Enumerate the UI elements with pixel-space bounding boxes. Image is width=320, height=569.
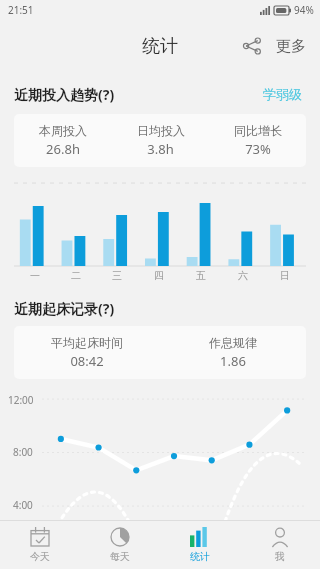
staticText: 73% bbox=[245, 140, 271, 158]
staticText: 统计 bbox=[190, 550, 210, 563]
staticText: 94% bbox=[294, 3, 314, 17]
staticText: 二 bbox=[71, 269, 81, 282]
staticText: 六 bbox=[238, 269, 248, 282]
staticText: 08:42 bbox=[70, 352, 104, 370]
staticText: 21:51 bbox=[8, 3, 34, 17]
button[interactable]: 我 bbox=[240, 521, 320, 569]
staticText: 统计 bbox=[142, 35, 178, 58]
staticText: 本周投入 bbox=[39, 123, 87, 138]
button[interactable]: 更多 bbox=[272, 29, 310, 64]
staticText: 4:00 bbox=[13, 498, 33, 512]
staticText: 学弱级 bbox=[263, 86, 302, 102]
button[interactable]: 平均起床时间 bbox=[14, 326, 306, 379]
staticText: 8:00 bbox=[13, 445, 33, 459]
staticText: 作息规律 bbox=[209, 335, 257, 350]
staticText: 日均投入 bbox=[137, 123, 185, 138]
staticText: 26.8h bbox=[46, 140, 80, 158]
button[interactable]: 本周投入 bbox=[14, 114, 306, 167]
staticText: 四 bbox=[154, 269, 164, 282]
staticText: 日 bbox=[280, 269, 290, 282]
button[interactable]: 统计 bbox=[160, 521, 240, 569]
staticText: 同比增长 bbox=[234, 123, 282, 138]
button[interactable]: 今天 bbox=[0, 521, 80, 569]
staticText: 1.86 bbox=[220, 352, 246, 370]
staticText: 每天 bbox=[110, 550, 130, 563]
button[interactable]: Share bbox=[232, 26, 272, 66]
staticText: 我 bbox=[275, 550, 285, 563]
staticText: 3.8h bbox=[147, 140, 174, 158]
staticText: 更多 bbox=[276, 37, 306, 56]
button[interactable]: 学弱级 bbox=[259, 82, 306, 106]
staticText: 三 bbox=[112, 269, 122, 282]
staticText: 近期投入趋势(?) bbox=[14, 85, 115, 104]
staticText: 平均起床时间 bbox=[51, 335, 123, 350]
staticText: 五 bbox=[196, 269, 206, 282]
staticText: 12:00 bbox=[8, 393, 34, 407]
staticText: 一 bbox=[30, 269, 40, 282]
staticText: 今天 bbox=[30, 550, 50, 563]
staticText: 近期起床记录(?) bbox=[14, 299, 115, 318]
button[interactable]: 每天 bbox=[80, 521, 160, 569]
